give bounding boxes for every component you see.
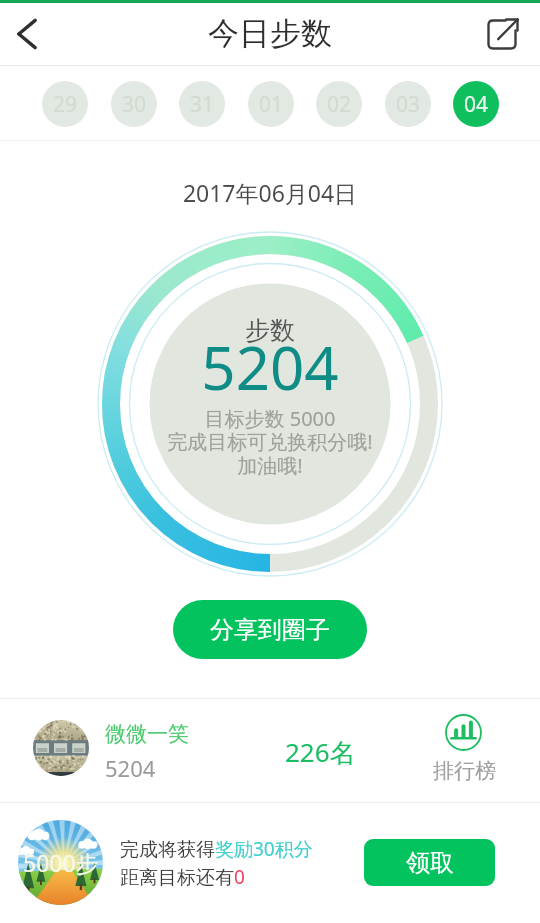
button[interactable]: Share xyxy=(465,3,540,65)
staticText: 完成目标可兑换积分哦! xyxy=(0,428,540,455)
staticText: 今日步数 xyxy=(0,14,540,53)
staticText: 领取 xyxy=(406,848,454,878)
staticText: 30 xyxy=(122,90,147,119)
staticText: 01 xyxy=(259,90,284,119)
button[interactable]: 31 xyxy=(179,81,225,127)
staticText: 04 xyxy=(464,90,489,119)
staticText: 分享到圈子 xyxy=(210,615,330,645)
staticText: 31 xyxy=(190,90,215,119)
staticText: 排行榜 xyxy=(433,758,496,784)
staticText: 29 xyxy=(53,90,78,119)
button[interactable]: 02 xyxy=(316,81,362,127)
button[interactable]: Back xyxy=(0,3,53,65)
staticText: 03 xyxy=(396,90,421,119)
button[interactable] xyxy=(0,699,540,802)
button[interactable]: 03 xyxy=(385,81,431,127)
staticText: 距离目标还有0 xyxy=(120,864,245,890)
staticText: 5000步 xyxy=(23,847,99,878)
staticText: 完成将获得奖励30积分 xyxy=(120,836,313,862)
staticText: 5204 xyxy=(0,326,540,408)
staticText: 5204 xyxy=(105,753,156,783)
button[interactable]: 分享到圈子 xyxy=(173,600,367,659)
button[interactable]: 30 xyxy=(111,81,157,127)
staticText: 02 xyxy=(327,90,352,119)
button[interactable]: 领取 xyxy=(364,839,495,886)
button[interactable]: 29 xyxy=(42,81,88,127)
button[interactable]: 04 xyxy=(453,81,499,127)
staticText: 步数 xyxy=(0,315,540,346)
staticText: 微微一笑 xyxy=(105,721,189,747)
staticText: 226名 xyxy=(285,734,356,770)
staticText: 加油哦! xyxy=(0,452,540,479)
button[interactable]: 01 xyxy=(248,81,294,127)
staticText: 目标步数 5000 xyxy=(0,405,540,432)
staticText: 2017年06月04日 xyxy=(0,177,540,208)
